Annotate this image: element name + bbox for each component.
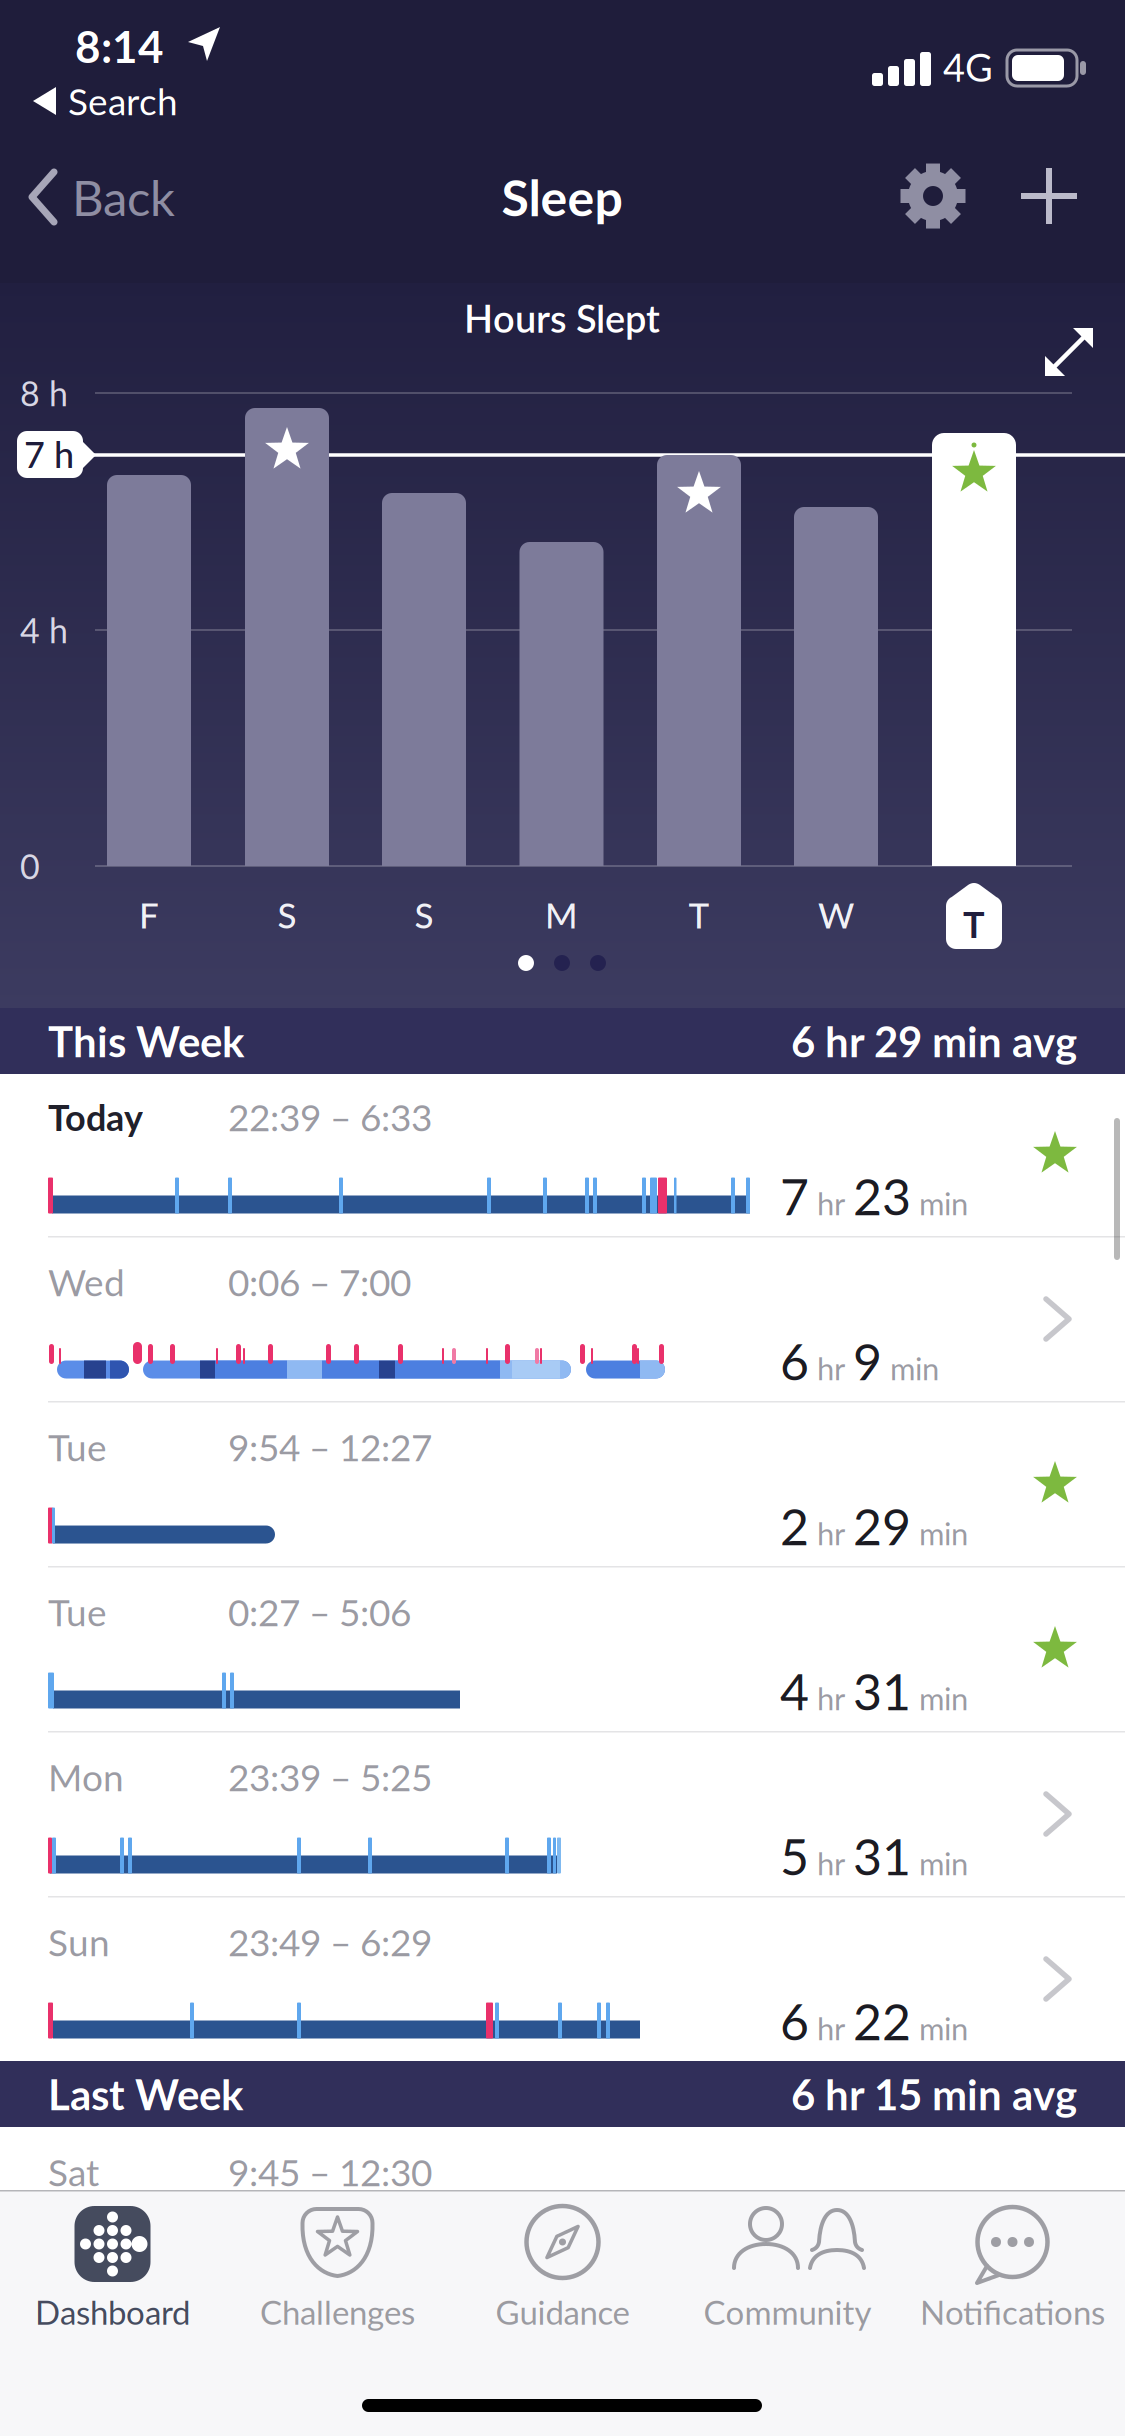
staticText: min	[890, 1350, 939, 1387]
staticText: min	[919, 2010, 968, 2047]
staticText: hr	[817, 1350, 845, 1387]
staticText: W	[818, 894, 854, 936]
staticText: 8:14	[75, 20, 164, 72]
staticText: hr	[817, 1515, 845, 1552]
staticText: Hours Slept	[464, 295, 660, 341]
staticText: Today	[48, 1095, 143, 1139]
staticText: Wed	[48, 1260, 125, 1304]
staticText: Community	[703, 2292, 871, 2332]
staticText: Tue	[48, 1425, 107, 1469]
staticText: 6	[780, 1331, 809, 1391]
staticText: hr	[817, 1185, 845, 1222]
staticText: F	[139, 894, 159, 936]
staticText: hr	[817, 2010, 845, 2047]
staticText: min	[919, 1680, 968, 1717]
staticText: Last Week	[48, 2069, 243, 2119]
staticText: S	[414, 894, 433, 936]
staticText: 4	[780, 1661, 809, 1721]
staticText: 6	[780, 1991, 809, 2051]
staticText: 0:27 – 5:06	[228, 1590, 411, 1634]
staticText: 0	[20, 846, 40, 886]
staticText: Sleep	[501, 167, 622, 227]
staticText: This Week	[48, 1016, 244, 1066]
staticText: T	[688, 894, 709, 936]
staticText: M	[545, 894, 578, 936]
staticText: min	[919, 1515, 968, 1552]
staticText: 23	[853, 1166, 911, 1226]
staticText: Dashboard	[35, 2292, 190, 2332]
staticText: hr	[817, 1680, 845, 1717]
staticText: 6 hr 29 min avg	[791, 1016, 1077, 1066]
staticText: Sun	[48, 1920, 110, 1964]
staticText: 6 hr 15 min avg	[791, 2069, 1077, 2119]
staticText: Guidance	[495, 2292, 629, 2332]
staticText: Mon	[48, 1755, 124, 1799]
staticText: 31	[853, 1826, 911, 1886]
staticText: 31	[853, 1661, 911, 1721]
staticText: 9:45 – 12:30	[228, 2150, 432, 2194]
staticText: min	[919, 1845, 968, 1882]
staticText: 7 h	[24, 432, 74, 476]
staticText: 8 h	[20, 373, 68, 413]
staticText: Tue	[48, 1590, 107, 1634]
staticText: 29	[853, 1496, 911, 1556]
staticText: 0:06 – 7:00	[228, 1260, 411, 1304]
staticText: min	[919, 1185, 968, 1222]
staticText: 5	[780, 1826, 809, 1886]
staticText: hr	[817, 1845, 845, 1882]
staticText: 2	[780, 1496, 809, 1556]
staticText: 4 h	[20, 610, 68, 650]
staticText: Search	[68, 79, 178, 123]
staticText: 23:39 – 5:25	[228, 1755, 432, 1799]
staticText: 7	[780, 1166, 809, 1226]
staticText: T	[963, 902, 985, 946]
staticText: Notifications	[920, 2292, 1105, 2332]
staticText: Sat	[48, 2150, 99, 2194]
staticText: Back	[72, 168, 175, 226]
staticText: 9:54 – 12:27	[228, 1425, 432, 1469]
staticText: 22	[853, 1991, 911, 2051]
staticText: 9	[853, 1331, 882, 1391]
staticText: 22:39 – 6:33	[228, 1095, 432, 1139]
staticText: 4G	[943, 44, 993, 90]
staticText: Challenges	[260, 2292, 415, 2332]
staticText: 23:49 – 6:29	[228, 1920, 432, 1964]
staticText: S	[277, 894, 296, 936]
